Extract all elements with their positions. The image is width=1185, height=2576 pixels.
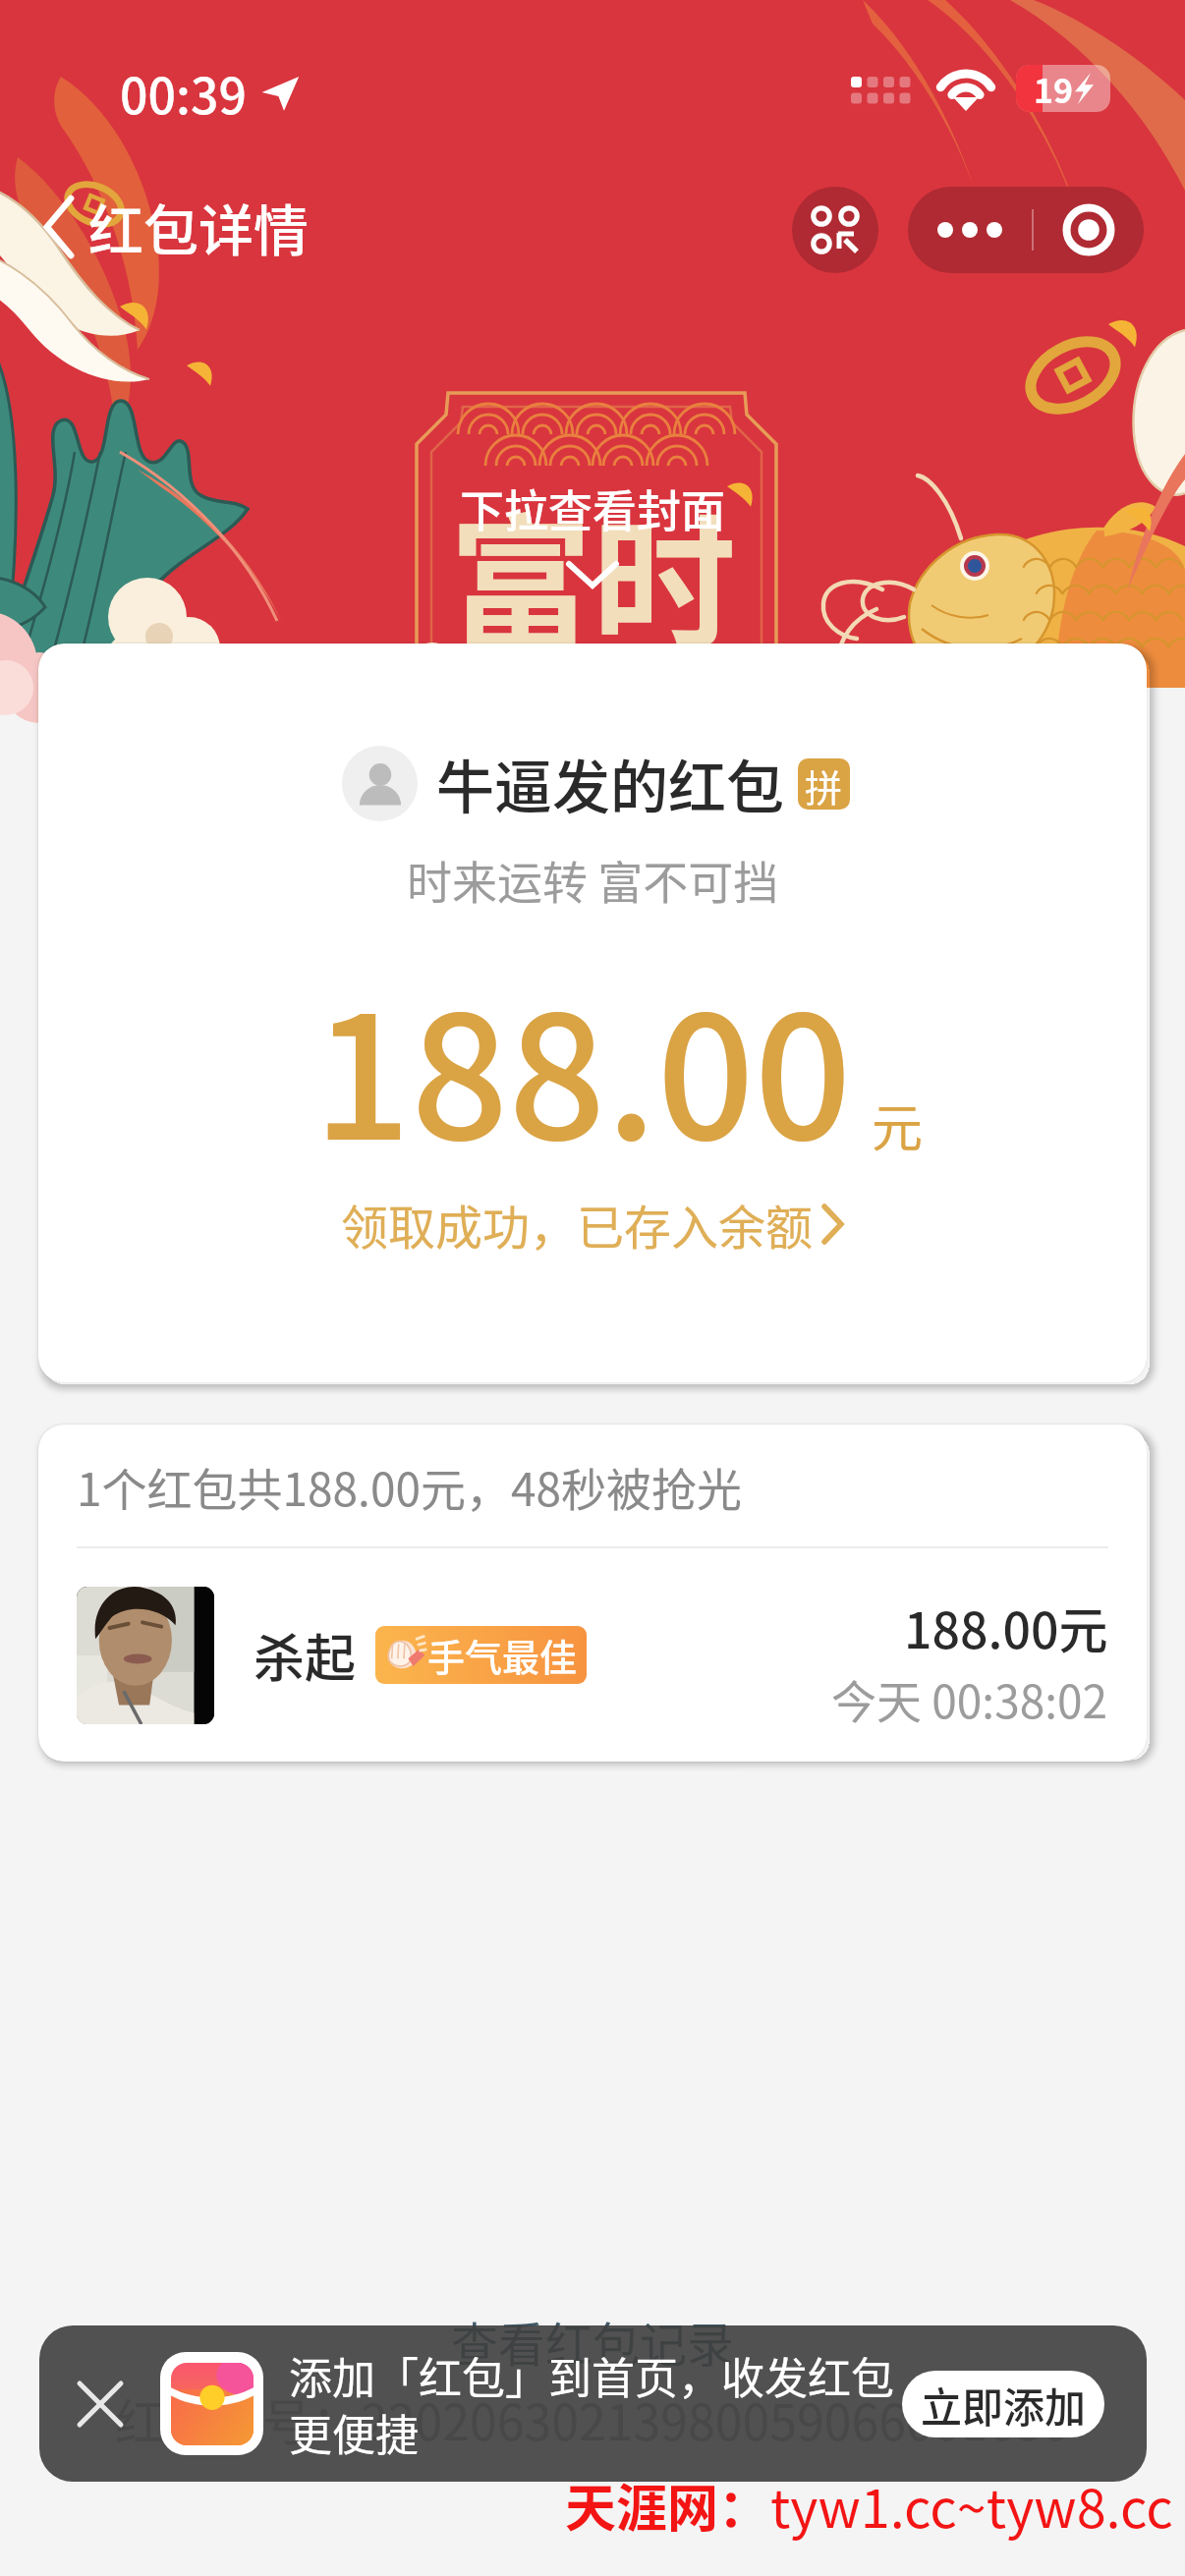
staticText: 时来运转 富不可挡: [407, 847, 779, 913]
button[interactable]: 立即添加: [902, 2371, 1104, 2437]
staticText: 立即添加: [921, 2375, 1087, 2435]
staticText: 富时: [449, 470, 736, 677]
staticText: 红包详情: [88, 187, 309, 266]
button[interactable]: Close: [1034, 187, 1144, 273]
button[interactable]: 查看红包记录: [451, 2307, 735, 2376]
staticText: 1个红包共188.00元，48秒被抢光: [77, 1454, 743, 1520]
staticText: 添加「红包」到首页，收发红包 更便捷: [289, 2344, 902, 2464]
staticText: 元: [872, 1088, 924, 1161]
staticText: 拼: [805, 758, 843, 810]
button[interactable]: Back: [29, 179, 322, 274]
button[interactable]: 下拉查看封面: [0, 476, 1185, 589]
staticText: 手气最佳: [427, 1628, 578, 1682]
staticText: 天涯网：: [565, 2468, 770, 2542]
button[interactable]: 领取成功，已存入余额: [331, 1186, 855, 1262]
staticText: tyw1.cc~tyw8.cc: [770, 2466, 1173, 2543]
staticText: 下拉查看封面: [460, 476, 726, 540]
staticText: 今天 00:38:02: [831, 1666, 1108, 1732]
button[interactable]: Close banner: [39, 2325, 160, 2482]
staticText: 牛逼发的红包: [436, 742, 785, 825]
staticText: 188.00元: [904, 1592, 1108, 1662]
staticText: 杀起: [254, 1618, 357, 1692]
staticText: 19: [1034, 65, 1074, 112]
staticText: 188.00: [313, 941, 852, 1189]
staticText: 领取成功，已存入余额: [341, 1190, 814, 1259]
staticText: 红包编号：22020630213980059066001630: [115, 2383, 1070, 2454]
staticText: 00:39: [120, 57, 247, 128]
button[interactable]: 杀起: [38, 1548, 1147, 1762]
button[interactable]: More options: [908, 187, 1032, 273]
button[interactable]: Mini program: [792, 187, 878, 273]
